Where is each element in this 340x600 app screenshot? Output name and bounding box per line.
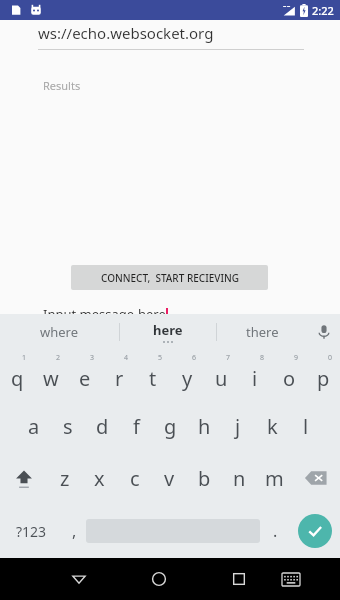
button[interactable]: where — [0, 314, 119, 350]
staticText: w — [43, 365, 59, 392]
button[interactable]: here — [120, 314, 216, 350]
button[interactable]: k — [255, 400, 289, 452]
staticText: d — [96, 413, 109, 440]
staticText: f — [133, 413, 140, 440]
staticText: s — [63, 413, 73, 440]
staticText: 3 — [90, 353, 95, 363]
button[interactable]: g — [153, 400, 187, 452]
staticText: r — [115, 365, 124, 392]
button[interactable]: Input message — [43, 305, 168, 323]
button[interactable]: Shift — [0, 452, 48, 504]
button[interactable]: z — [48, 452, 82, 504]
staticText: y — [182, 365, 193, 392]
button[interactable]: 6 — [170, 350, 204, 400]
staticText: 6 — [192, 353, 197, 363]
staticText: a — [28, 413, 40, 440]
staticText: here — [153, 321, 183, 339]
staticText: e — [79, 365, 91, 392]
button[interactable]: j — [221, 400, 255, 452]
staticText: h — [198, 413, 211, 440]
staticText: 2 — [56, 353, 61, 363]
button[interactable]: c — [117, 452, 152, 504]
staticText: 2:22 — [312, 3, 334, 18]
staticText: 7 — [226, 353, 231, 363]
staticText: i — [252, 365, 258, 392]
button[interactable]: h — [187, 400, 221, 452]
staticText: where — [40, 323, 79, 341]
staticText: g — [164, 413, 177, 440]
staticText: Input message — [43, 305, 138, 323]
staticText: 0 — [328, 353, 333, 363]
button[interactable]: Switch keyboard — [271, 559, 311, 599]
staticText: . — [273, 520, 278, 542]
staticText: o — [283, 365, 296, 392]
button[interactable]: 1 — [0, 350, 34, 400]
staticText: p — [317, 365, 330, 392]
staticText: t — [149, 365, 157, 392]
staticText: 1 — [22, 353, 27, 363]
staticText: q — [11, 365, 24, 392]
button[interactable]: 4 — [102, 350, 136, 400]
staticText: CONNECT, START RECIEVING — [101, 271, 239, 285]
staticText: 9 — [294, 353, 299, 363]
staticText: 8 — [260, 353, 265, 363]
button[interactable]: CONNECT, START RECIEVING — [71, 265, 268, 290]
button[interactable]: b — [187, 452, 222, 504]
button[interactable]: 7 — [204, 350, 238, 400]
button[interactable]: 0 — [306, 350, 340, 400]
button[interactable]: Recent apps — [215, 558, 263, 600]
button[interactable]: 5 — [136, 350, 170, 400]
staticText: m — [265, 465, 284, 492]
button[interactable]: x — [82, 452, 117, 504]
button[interactable]: d — [85, 400, 119, 452]
staticText: v — [164, 465, 175, 492]
button[interactable]: Home — [135, 558, 183, 600]
staticText: u — [215, 365, 228, 392]
button[interactable]: a — [17, 400, 51, 452]
button[interactable]: Enter — [290, 504, 340, 558]
button[interactable]: f — [119, 400, 153, 452]
staticText: x — [94, 465, 105, 492]
staticText: here — [138, 305, 166, 323]
button[interactable]: Voice input — [307, 314, 340, 350]
staticText: there — [246, 323, 279, 341]
button[interactable]: ws://echo.websocket.org — [38, 23, 214, 43]
staticText: c — [130, 465, 140, 492]
button[interactable]: . — [260, 504, 290, 558]
button[interactable]: s — [51, 400, 85, 452]
staticText: l — [303, 413, 309, 440]
button[interactable]: , — [62, 504, 86, 558]
button[interactable]: l — [289, 400, 323, 452]
button[interactable]: n — [222, 452, 257, 504]
button[interactable]: ?123 — [0, 504, 62, 558]
button[interactable] — [86, 504, 260, 558]
button[interactable]: there — [217, 314, 307, 350]
staticText: n — [233, 465, 246, 492]
staticText: 4 — [124, 353, 129, 363]
button[interactable]: 8 — [238, 350, 272, 400]
button[interactable]: Backspace — [292, 452, 340, 504]
staticText: 5 — [158, 353, 163, 363]
button[interactable]: 9 — [272, 350, 306, 400]
staticText: z — [60, 465, 70, 492]
button[interactable]: 3 — [68, 350, 102, 400]
button[interactable]: Back — [55, 558, 103, 600]
button[interactable]: m — [257, 452, 292, 504]
staticText: , — [72, 520, 77, 542]
staticText: Results — [43, 78, 81, 93]
button[interactable]: v — [152, 452, 187, 504]
staticText: b — [198, 465, 211, 492]
staticText: k — [267, 413, 278, 440]
button[interactable]: 2 — [34, 350, 68, 400]
staticText: ?123 — [16, 522, 47, 541]
staticText: j — [235, 413, 241, 440]
